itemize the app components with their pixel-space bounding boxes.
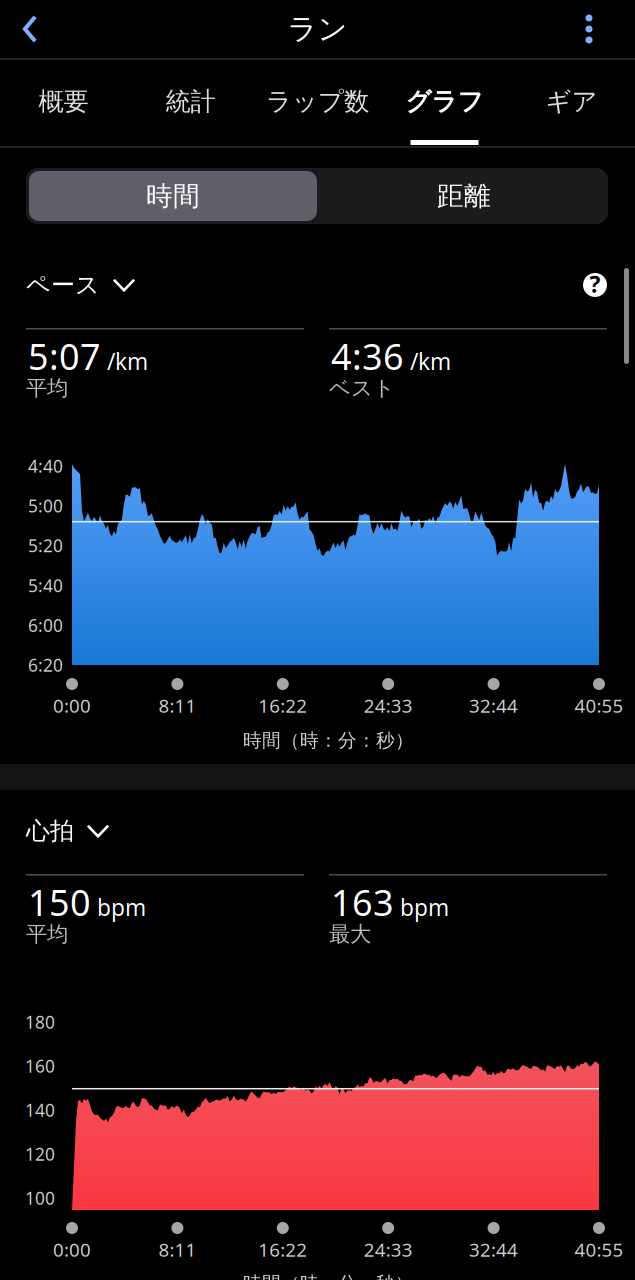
staticText: 6:20 (28, 653, 63, 676)
staticText: 4:40 (28, 454, 63, 477)
staticText: 0:00 (53, 693, 91, 718)
staticText: 8:11 (158, 1237, 196, 1262)
button[interactable]: ペース (26, 268, 135, 302)
staticText: ラップ数 (266, 86, 369, 117)
button[interactable]: グラフ (381, 60, 508, 146)
staticText: 160 (25, 1054, 55, 1077)
staticText: 5:40 (28, 574, 63, 597)
staticText: 180 (25, 1010, 55, 1033)
staticText: 時間（時：分：秒） (243, 1272, 414, 1280)
staticText: 最大 (329, 921, 371, 947)
button[interactable]: Back (0, 0, 60, 58)
staticText: 24:33 (364, 1237, 413, 1262)
staticText: /km (107, 346, 148, 376)
staticText: 16:22 (258, 1237, 307, 1262)
staticText: 32:44 (469, 693, 518, 718)
staticText: 4:36 (331, 332, 404, 380)
staticText: 40:55 (574, 1237, 623, 1262)
staticText: 平均 (26, 375, 68, 401)
staticText: 統計 (165, 86, 215, 117)
staticText: 40:55 (574, 693, 623, 718)
staticText: 5:20 (28, 534, 63, 557)
staticText: 150 (28, 878, 91, 926)
staticText: 平均 (26, 921, 68, 947)
button[interactable]: ラップ数 (254, 60, 381, 146)
staticText: 概要 (38, 86, 88, 117)
button[interactable]: Help (575, 265, 615, 305)
staticText: bpm (97, 892, 146, 922)
staticText: 時間 (146, 180, 200, 212)
staticText: 心拍 (26, 816, 74, 846)
staticText: グラフ (405, 86, 483, 117)
staticText: 0:00 (53, 1237, 91, 1262)
staticText: 140 (25, 1098, 55, 1121)
staticText: 6:00 (28, 614, 63, 637)
staticText: 5:00 (28, 494, 63, 517)
staticText: 時間（時：分：秒） (243, 729, 414, 752)
staticText: 100 (25, 1186, 55, 1209)
staticText: ペース (26, 270, 100, 300)
button[interactable]: 概要 (0, 60, 127, 146)
staticText: 8:11 (158, 693, 196, 718)
staticText: 16:22 (258, 693, 307, 718)
staticText: 距離 (437, 180, 491, 212)
button[interactable]: 時間 (26, 171, 317, 221)
button[interactable]: 心拍 (26, 814, 109, 848)
button[interactable]: 距離 (26, 171, 314, 221)
staticText: 163 (331, 878, 394, 926)
staticText: 120 (25, 1142, 55, 1165)
staticText: ラン (287, 11, 347, 47)
staticText: 24:33 (364, 693, 413, 718)
button[interactable]: ギア (508, 60, 635, 146)
staticText: ベスト (329, 375, 395, 401)
staticText: bpm (400, 892, 449, 922)
staticText: 32:44 (469, 1237, 518, 1262)
staticText: ? (589, 269, 600, 299)
button[interactable]: 統計 (127, 60, 254, 146)
staticText: ギア (545, 86, 597, 117)
staticText: /km (410, 346, 451, 376)
staticText: 5:07 (28, 332, 101, 380)
button[interactable]: More options (561, 0, 617, 58)
